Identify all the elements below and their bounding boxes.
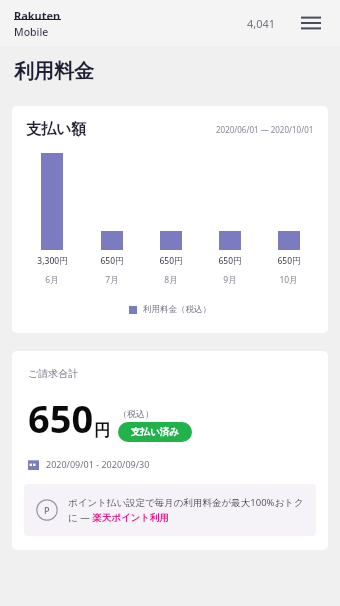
staticText: 650円 [218,255,242,267]
staticText: 6月 [45,274,59,286]
staticText: 2020/09/01 - 2020/09/30 [46,458,150,470]
staticText: 利用料金 [14,59,94,84]
staticText: 4,041 [247,16,276,31]
staticText: 8月 [164,274,178,286]
staticText: 7月 [105,274,119,286]
staticText: 支払い額 [26,120,87,139]
staticText: 650円 [100,255,124,267]
staticText: 650 [28,392,94,444]
button[interactable]: 4,041 [241,10,282,37]
staticText: Rakuten [14,8,61,23]
staticText: P [44,504,50,516]
button[interactable]: Menu [296,8,326,38]
staticText: 円 [94,421,110,441]
staticText: 2020/06/01 — 2020/10/01 [216,124,314,135]
staticText: 10月 [279,274,298,286]
staticText: 3,300円 [37,255,68,267]
staticText: 9月 [223,274,237,286]
staticText: Mobile [14,25,49,39]
staticText: 650円 [159,255,183,267]
staticText: 650円 [277,255,301,267]
staticText: 利用料金（税込） [143,304,211,315]
staticText: ご請求合計 [28,367,79,380]
staticText: ポイント払い設定で毎月の利用料金が最大100%おトクに — 楽天ポイント利用 [68,496,304,524]
button[interactable]: Rakuten [14,6,61,41]
staticText: （税込） [118,408,154,419]
staticText: 支払い済み [131,426,179,438]
button[interactable]: 支払い済み [118,422,192,442]
button[interactable]: P [24,484,316,536]
